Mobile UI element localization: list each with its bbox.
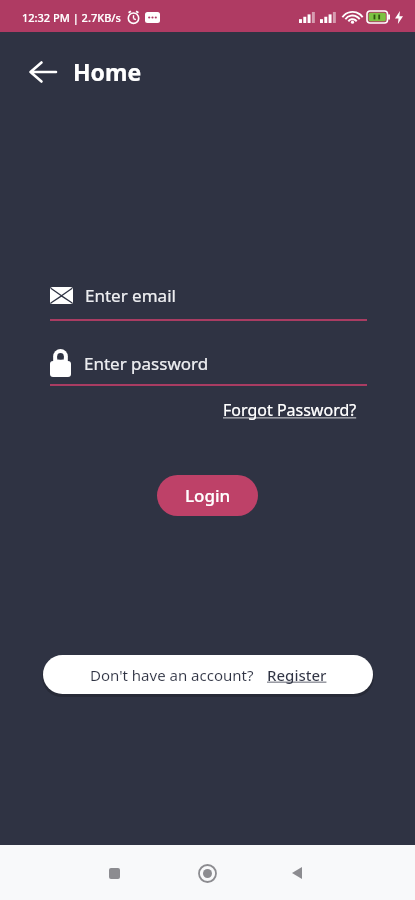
staticText: Register: [267, 665, 327, 685]
button[interactable]: Enter email: [50, 281, 367, 309]
staticText: Login: [185, 484, 231, 507]
staticText: Enter email: [85, 284, 176, 307]
staticText: 12:32 PM | 2.7KB/s: [22, 10, 121, 25]
button[interactable]: Login: [157, 475, 258, 516]
button[interactable]: Don't have an account?: [43, 655, 373, 694]
button[interactable]: Enter password: [50, 347, 367, 379]
button[interactable]: [281, 857, 313, 889]
button[interactable]: Forgot Password?: [223, 399, 357, 421]
staticText: Enter password: [84, 352, 209, 375]
button[interactable]: [191, 857, 223, 889]
button[interactable]: [98, 857, 130, 889]
button[interactable]: [24, 57, 60, 87]
staticText: Home: [73, 56, 142, 87]
staticText: Don't have an account?: [90, 665, 254, 685]
